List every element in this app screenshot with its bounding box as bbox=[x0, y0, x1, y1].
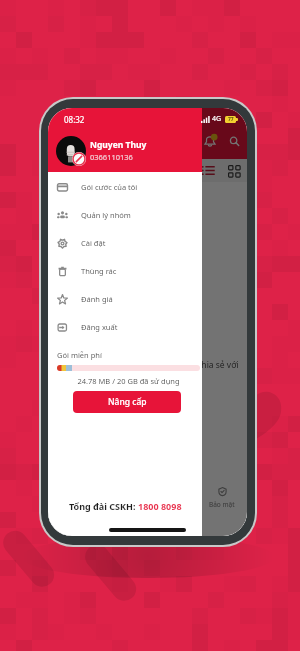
staticText: Bảo mật bbox=[209, 500, 235, 509]
staticText: 08:32 bbox=[64, 114, 85, 125]
button[interactable]: Grid view bbox=[228, 165, 240, 177]
staticText: Gói miễn phí bbox=[57, 350, 102, 360]
button[interactable]: Thùng rác bbox=[48, 257, 202, 285]
staticText: 77 bbox=[228, 116, 234, 123]
staticText: Nguyen Thuy bbox=[90, 139, 147, 151]
button[interactable]: Search bbox=[223, 130, 245, 152]
button[interactable]: Cài đặt bbox=[48, 229, 202, 257]
staticText: 0366110136 bbox=[90, 152, 133, 162]
staticText: Đăng xuất bbox=[81, 322, 118, 332]
staticText: Thùng rác bbox=[81, 266, 117, 276]
staticText: Nâng cấp bbox=[108, 396, 147, 408]
staticText: 24.78 MB / 20 GB đã sử dụng bbox=[57, 376, 200, 386]
button[interactable]: Nâng cấp bbox=[73, 391, 181, 413]
button[interactable]: Đánh giá bbox=[48, 285, 202, 313]
staticText: Tổng đài CSKH: bbox=[69, 500, 138, 512]
button[interactable]: Gói cước của tôi bbox=[48, 173, 202, 201]
staticText: Gói cước của tôi bbox=[81, 182, 138, 192]
button[interactable]: Quản lý nhóm bbox=[48, 201, 202, 229]
staticText: Đánh giá bbox=[81, 294, 113, 304]
staticText: Chia sẻ với bbox=[196, 359, 239, 371]
staticText: Cài đặt bbox=[81, 238, 106, 248]
staticText: 4G bbox=[212, 114, 222, 124]
button[interactable]: Đăng xuất bbox=[48, 313, 202, 341]
button[interactable]: List view bbox=[202, 164, 215, 177]
staticText: Quản lý nhóm bbox=[81, 210, 131, 220]
button[interactable]: Notifications bbox=[199, 130, 221, 152]
button[interactable]: 1800 8098 bbox=[138, 500, 182, 512]
button[interactable]: Bảo mật bbox=[202, 482, 242, 514]
